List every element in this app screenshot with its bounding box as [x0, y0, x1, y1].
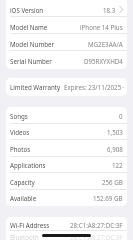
staticText: Applications	[10, 161, 46, 169]
staticText: Videos	[10, 128, 30, 136]
staticText: 0	[119, 112, 123, 120]
staticText: Model Name	[10, 23, 48, 31]
staticText: Available	[10, 194, 37, 202]
button[interactable]: Model Name	[6, 17, 127, 34]
staticText: Photos	[10, 145, 31, 153]
staticText: 122	[112, 161, 123, 169]
staticText: MG2E3AA/A	[88, 40, 123, 48]
staticText: 18.3	[103, 6, 116, 14]
staticText: Capacity	[10, 178, 35, 186]
staticText: 152.69 GB	[93, 194, 123, 202]
button[interactable]: Capacity	[6, 173, 127, 190]
staticText: 256 GB	[102, 178, 123, 186]
button[interactable]: Photos	[6, 140, 127, 157]
button[interactable]: Serial Number	[6, 51, 127, 68]
staticText: 1,503	[107, 128, 123, 136]
button[interactable]: Wi-Fi Address	[6, 217, 127, 231]
staticText: Wi-Fi Address	[10, 221, 50, 229]
staticText: Model Number	[10, 40, 55, 48]
staticText: iPhone 14 Plus	[80, 23, 123, 31]
button[interactable]: Songs	[6, 107, 127, 124]
button[interactable]: Videos	[6, 124, 127, 140]
button[interactable]: Limited Warranty	[6, 78, 127, 96]
staticText: Bluetooth	[10, 233, 39, 240]
staticText: iOS Version	[10, 6, 44, 14]
staticText: Limited Warranty	[10, 83, 61, 91]
button[interactable]: Applications	[6, 157, 127, 173]
staticText: Expires: 23/11/2025	[64, 83, 122, 91]
other: More	[119, 6, 123, 13]
button[interactable]: Available	[6, 190, 127, 206]
staticText: D95RXYXHD4	[84, 57, 123, 65]
button[interactable]: Model Number	[6, 34, 127, 51]
staticText: Serial Number	[10, 57, 52, 65]
staticText: 28:C1:A8:27:DC:3F	[70, 221, 123, 229]
staticText: 28:C1:A8:27:DC:3F	[70, 233, 123, 240]
button[interactable]: iOS Version	[6, 0, 127, 17]
staticText: Songs	[10, 112, 28, 120]
staticText: 6,908	[107, 145, 123, 153]
button[interactable]: Bluetooth	[6, 231, 127, 240]
